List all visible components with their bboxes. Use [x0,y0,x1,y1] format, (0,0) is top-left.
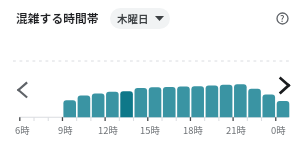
staticText: 21時 [226,123,246,137]
staticText: 15時 [140,123,160,137]
staticText: 18時 [183,123,203,137]
button[interactable] [11,79,33,101]
staticText: 12時 [98,123,118,137]
staticText: ? [280,12,285,25]
button[interactable] [272,74,294,96]
button[interactable]: ? [274,10,290,26]
staticText: 混雑する時間帯 [16,9,99,26]
staticText: 木曜日 [117,11,149,26]
button[interactable]: 木曜日 [110,8,170,29]
staticText: 9時 [58,123,73,137]
staticText: 0時 [271,123,286,137]
staticText: 6時 [15,123,30,137]
